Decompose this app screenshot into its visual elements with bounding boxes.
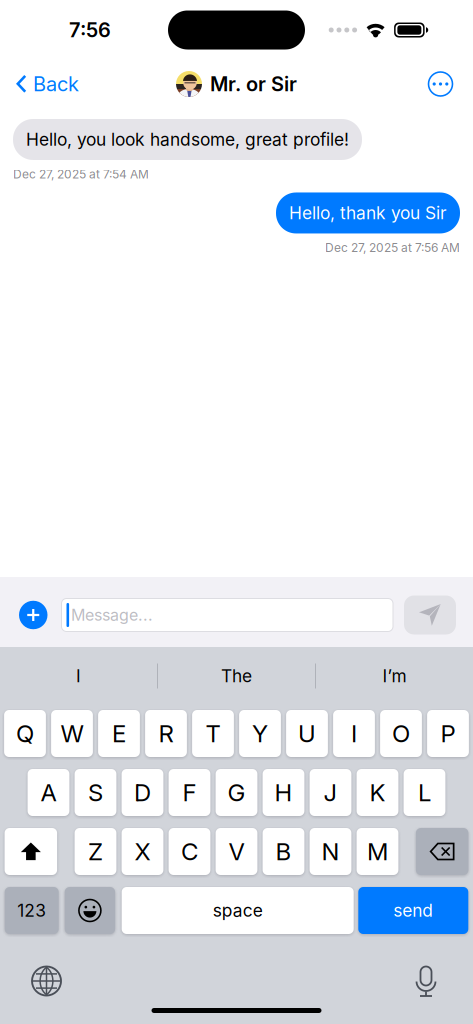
button[interactable]: Add attachment xyxy=(19,601,47,629)
staticText: L xyxy=(418,778,431,807)
staticText: B xyxy=(275,837,291,866)
staticText: Y xyxy=(252,719,268,748)
button[interactable]: I’m xyxy=(316,653,473,699)
staticText: I xyxy=(351,719,357,748)
staticText: K xyxy=(369,778,385,807)
staticText: F xyxy=(182,778,196,807)
staticText: Mr. or Sir xyxy=(210,72,297,96)
button[interactable]: W xyxy=(51,710,93,757)
staticText: Dec 27, 2025 at 7:54 AM xyxy=(13,167,149,181)
button[interactable]: Back xyxy=(0,64,79,104)
button[interactable]: C xyxy=(169,828,210,875)
staticText: space xyxy=(213,900,263,921)
button[interactable]: 123 xyxy=(5,887,59,934)
button[interactable]: E xyxy=(98,710,140,757)
staticText: P xyxy=(440,719,455,748)
staticText: O xyxy=(392,719,410,748)
button[interactable]: Next keyboard xyxy=(32,966,61,995)
staticText: T xyxy=(205,719,220,748)
button[interactable]: Q xyxy=(4,710,46,757)
button[interactable]: D xyxy=(122,769,163,816)
staticText: I’m xyxy=(382,665,406,686)
button[interactable]: Y xyxy=(239,710,281,757)
button[interactable]: I xyxy=(0,653,157,699)
staticText: Dec 27, 2025 at 7:56 AM xyxy=(325,240,460,255)
staticText: Message... xyxy=(71,605,153,625)
staticText: R xyxy=(158,719,173,748)
button[interactable]: send xyxy=(358,887,468,934)
staticText: N xyxy=(321,837,339,866)
staticText: The xyxy=(221,665,252,686)
button[interactable]: M xyxy=(357,828,398,875)
staticText: Hello, you look handsome, great profile! xyxy=(26,129,349,150)
button[interactable]: K xyxy=(357,769,398,816)
button[interactable]: L xyxy=(404,769,445,816)
staticText: U xyxy=(298,719,316,748)
staticText: C xyxy=(181,837,198,866)
staticText: send xyxy=(393,900,433,921)
button[interactable]: G xyxy=(216,769,257,816)
button[interactable]: I xyxy=(333,710,375,757)
button[interactable]: Z xyxy=(75,828,116,875)
staticText: Z xyxy=(88,837,103,866)
staticText: E xyxy=(112,719,126,748)
button[interactable]: P xyxy=(427,710,469,757)
staticText: G xyxy=(227,778,245,807)
button[interactable]: N xyxy=(310,828,351,875)
staticText: X xyxy=(134,837,150,866)
button[interactable]: O xyxy=(380,710,422,757)
button[interactable]: Send xyxy=(404,595,456,634)
button[interactable]: J xyxy=(310,769,351,816)
staticText: W xyxy=(60,719,83,748)
button[interactable]: R xyxy=(145,710,187,757)
button[interactable]: S xyxy=(75,769,116,816)
staticText: V xyxy=(228,837,244,866)
staticText: D xyxy=(134,778,151,807)
button[interactable]: Emoji xyxy=(65,887,115,934)
button[interactable]: V xyxy=(216,828,257,875)
button[interactable]: A xyxy=(28,769,69,816)
staticText: M xyxy=(367,837,388,866)
button[interactable]: Delete xyxy=(416,828,468,875)
button[interactable]: U xyxy=(286,710,328,757)
staticText: H xyxy=(274,778,292,807)
staticText: Q xyxy=(16,719,34,748)
button[interactable]: space xyxy=(122,887,354,934)
button[interactable]: Dictate xyxy=(415,965,437,997)
button[interactable]: T xyxy=(192,710,234,757)
button[interactable]: Shift xyxy=(5,828,57,875)
staticText: S xyxy=(88,778,103,807)
staticText: A xyxy=(40,778,56,807)
staticText: I xyxy=(76,665,81,686)
button[interactable]: The xyxy=(158,653,315,699)
staticText: 123 xyxy=(17,900,46,921)
button[interactable]: B xyxy=(263,828,304,875)
staticText: J xyxy=(323,778,337,807)
staticText: 7:56 xyxy=(69,18,111,42)
button[interactable]: X xyxy=(122,828,163,875)
button[interactable]: F xyxy=(169,769,210,816)
button[interactable]: H xyxy=(263,769,304,816)
button[interactable]: More options xyxy=(428,63,473,104)
staticText: Hello, thank you Sir xyxy=(289,202,447,223)
staticText: Back xyxy=(33,72,79,96)
